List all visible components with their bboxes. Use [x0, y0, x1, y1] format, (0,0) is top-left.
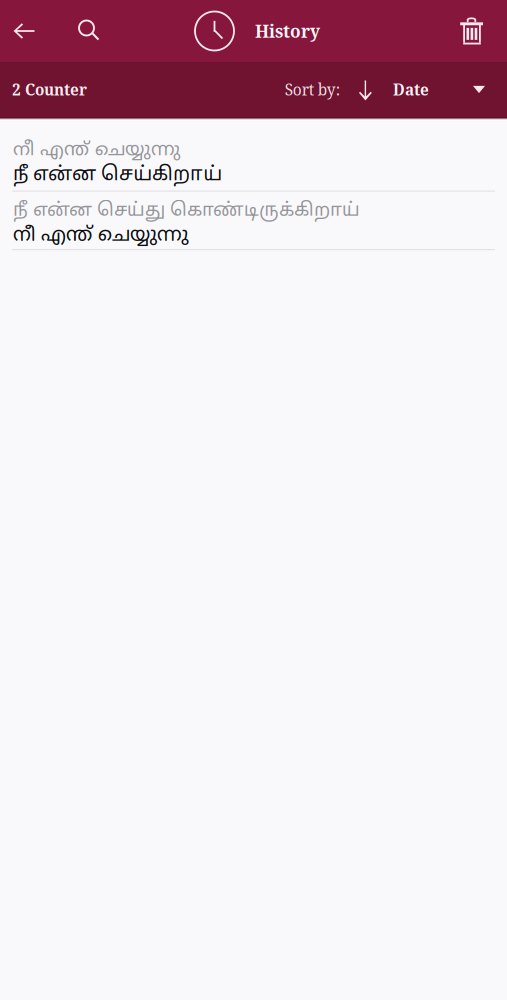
staticText: நீ என்ன செய்கிறாய்	[13, 163, 222, 188]
staticText: നീ എന്ത് ചെയ്യുന്നു	[13, 224, 189, 248]
button[interactable]: Back	[0, 0, 48, 62]
button[interactable]: നീ എന്ത് ചെയ്യുന്നു	[0, 121, 507, 191]
button[interactable]: நீ என்ன செய்து கொண்டிருக்கிறாய்	[0, 192, 507, 249]
button[interactable]: Search	[48, 0, 112, 62]
staticText: നീ എന്ത് ചെയ്യുന്നു	[13, 139, 180, 162]
button[interactable]: Sort by:	[285, 62, 507, 117]
staticText: நீ என்ன செய்து கொண்டிருக்கிறாய்	[13, 200, 360, 223]
staticText: 2 Counter	[12, 79, 87, 100]
staticText: History	[255, 19, 320, 43]
staticText: Sort by:	[285, 79, 340, 100]
staticText: Date	[393, 79, 429, 100]
button[interactable]: Delete history	[444, 0, 507, 62]
